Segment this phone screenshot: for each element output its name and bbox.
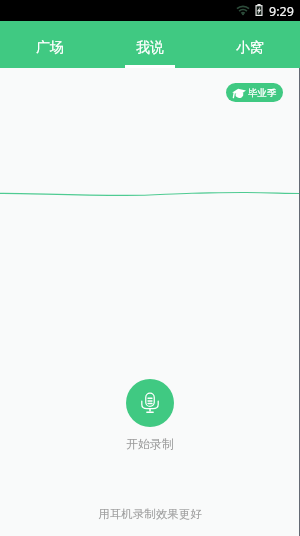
staticText: 毕业季 xyxy=(248,87,277,99)
staticText: 广场 xyxy=(36,39,64,57)
staticText: 小窝 xyxy=(236,39,264,57)
button[interactable]: 我说 xyxy=(100,21,200,68)
button[interactable]: 毕业季 xyxy=(226,83,283,102)
button[interactable]: 开始录制 xyxy=(126,379,174,427)
staticText: 我说 xyxy=(136,39,164,57)
button[interactable]: 广场 xyxy=(0,21,100,68)
staticText: 9:29 xyxy=(269,3,294,20)
staticText: 开始录制 xyxy=(0,436,300,451)
staticText: 用耳机录制效果更好 xyxy=(0,507,300,521)
button[interactable]: 小窝 xyxy=(200,21,300,68)
